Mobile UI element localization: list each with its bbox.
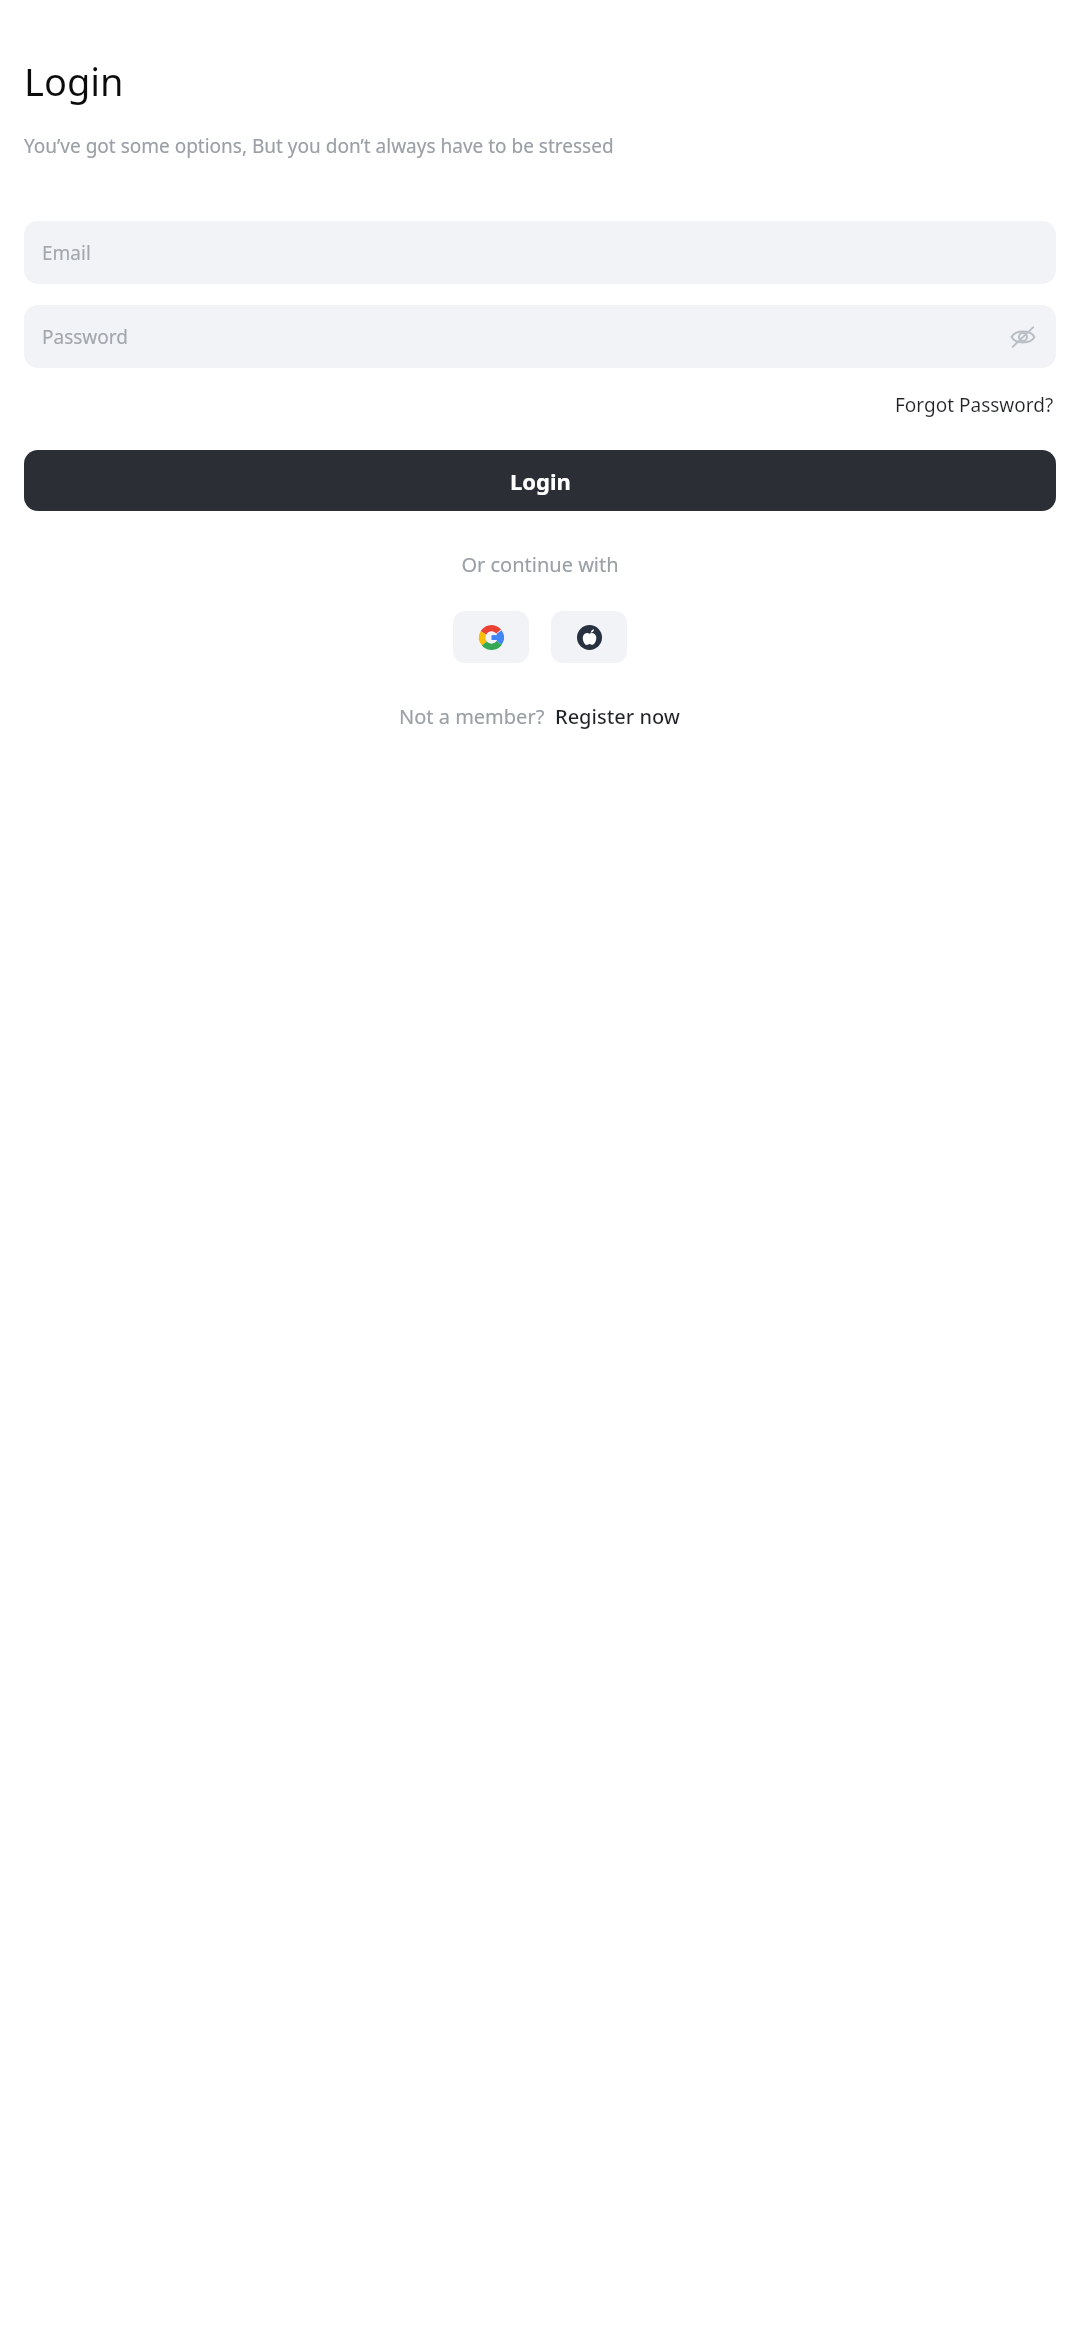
button[interactable]: Email (24, 221, 1056, 284)
button[interactable]: Sign in with Apple (551, 611, 627, 663)
staticText: Email (42, 240, 91, 266)
button[interactable]: Sign in with Google (453, 611, 529, 663)
staticText: Forgot Password? (895, 392, 1054, 418)
button[interactable]: Forgot Password? (893, 388, 1056, 422)
button[interactable]: Login (24, 450, 1056, 511)
staticText: Login (24, 55, 124, 107)
button[interactable]: Register now (553, 699, 682, 734)
staticText: Or continue with (461, 551, 619, 578)
staticText: You’ve got some options, But you don’t a… (24, 133, 614, 159)
button[interactable]: Show password (1008, 322, 1038, 352)
staticText: Password (42, 324, 128, 350)
staticText: Not a member? (399, 703, 545, 730)
staticText: Login (510, 466, 571, 496)
button[interactable]: Password (24, 305, 1056, 368)
staticText: Register now (555, 703, 680, 730)
